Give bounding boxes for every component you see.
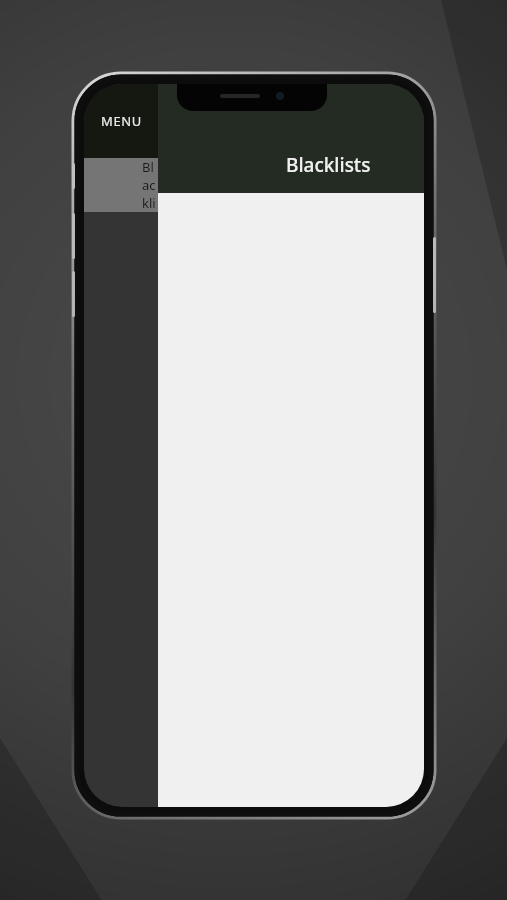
button[interactable]: Blacklists	[84, 158, 158, 212]
button[interactable]: Blacklists	[158, 137, 424, 193]
staticText: Blacklists	[286, 152, 371, 178]
button[interactable]: MENU	[84, 84, 158, 158]
staticText: Blacklists	[142, 158, 158, 212]
staticText: MENU	[101, 112, 142, 130]
